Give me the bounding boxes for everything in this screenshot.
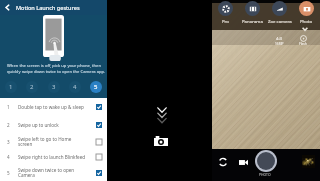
button[interactable]: Zoe camera xyxy=(266,0,293,24)
staticText: PHOTO xyxy=(259,172,271,177)
staticText: 3 xyxy=(52,83,56,91)
staticText: Swipe left to go to Home screen xyxy=(18,136,93,148)
staticText: Swipe right to launch Blinkfeed xyxy=(18,154,93,160)
staticText: Double tap to wake up & sleep xyxy=(18,104,93,110)
staticText: 2 xyxy=(7,122,10,128)
button[interactable]: Back xyxy=(0,0,107,15)
button[interactable]: 1 xyxy=(0,98,107,116)
button[interactable]: 4:3 xyxy=(273,36,285,46)
staticText: Pro xyxy=(222,18,229,24)
other: Back xyxy=(3,3,12,12)
staticText: 3 xyxy=(7,139,10,145)
button[interactable]: Expand modes xyxy=(302,27,308,31)
staticText: 1 xyxy=(7,104,10,110)
staticText: 16MP xyxy=(275,42,284,46)
staticText: Motion Launch gestures xyxy=(16,4,80,12)
button[interactable]: Photo xyxy=(293,0,320,24)
other: Camera xyxy=(154,136,168,146)
button[interactable]: Flash xyxy=(297,35,309,46)
staticText: Flash xyxy=(299,42,307,46)
staticText: Swipe up to unlock xyxy=(18,122,93,128)
button[interactable]: Pro xyxy=(212,0,239,24)
staticText: 2 xyxy=(30,83,34,91)
staticText: Panorama xyxy=(242,18,263,24)
button[interactable]: Video mode xyxy=(239,159,248,166)
button[interactable]: 4 xyxy=(0,150,107,164)
button[interactable]: 5 xyxy=(90,81,102,93)
staticText: Swipe down twice to open Camera xyxy=(18,167,93,179)
staticText: When the screen is off, pick up your pho… xyxy=(7,63,106,74)
button[interactable]: Panorama xyxy=(239,0,266,24)
other: Flash xyxy=(300,35,307,42)
staticText: 5 xyxy=(94,83,98,91)
staticText: Zoe camera xyxy=(268,18,292,24)
button[interactable]: Shutter xyxy=(255,150,277,172)
button[interactable]: 2 xyxy=(26,81,38,93)
staticText: 4 xyxy=(7,154,10,160)
button[interactable]: 2 xyxy=(0,116,107,133)
button[interactable]: 3 xyxy=(48,81,60,93)
button[interactable]: 5 xyxy=(0,164,107,181)
button[interactable]: Switch camera xyxy=(217,156,229,168)
button[interactable]: 1 xyxy=(5,81,17,93)
staticText: 5 xyxy=(7,170,10,176)
button[interactable]: 3 xyxy=(0,133,107,150)
staticText: 4 xyxy=(73,83,77,91)
staticText: 4:3 xyxy=(276,36,282,42)
button[interactable]: Gallery xyxy=(302,155,315,168)
staticText: Photo xyxy=(300,18,313,24)
staticText: 1 xyxy=(9,83,13,91)
button[interactable]: 4 xyxy=(69,81,81,93)
